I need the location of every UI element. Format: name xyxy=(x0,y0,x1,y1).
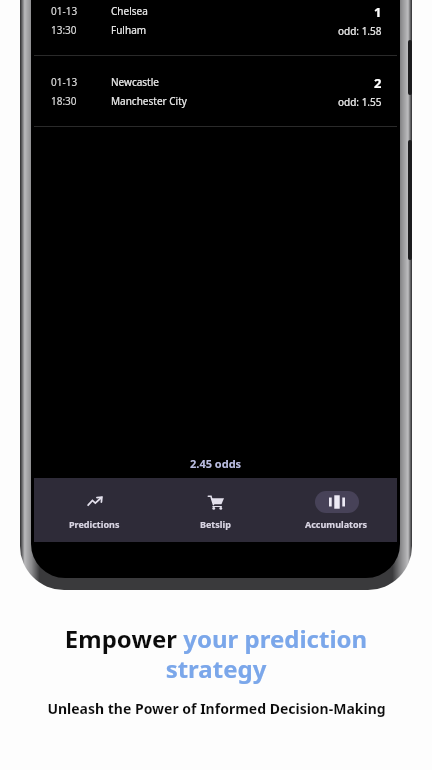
button[interactable]: 01-13 xyxy=(31,0,400,55)
staticText: Empower your prediction strategy xyxy=(24,622,408,685)
button[interactable]: Predictions xyxy=(34,485,155,536)
button[interactable]: Accumulators xyxy=(276,485,397,536)
staticText: Predictions xyxy=(69,518,120,530)
other: Predictions xyxy=(87,494,103,510)
staticText: odd: 1.58 xyxy=(338,24,382,38)
button[interactable]: 01-13 xyxy=(31,56,400,126)
staticText: Newcastle xyxy=(111,75,159,89)
staticText: 2.45 odds xyxy=(190,456,242,471)
staticText: 2 xyxy=(374,74,382,92)
button[interactable]: Betslip xyxy=(155,485,276,536)
staticText: Unleash the Power of Informed Decision-M… xyxy=(47,699,386,718)
staticText: odd: 1.55 xyxy=(338,95,382,109)
other: Volume button xyxy=(408,40,412,95)
staticText: 01-13 xyxy=(51,4,78,18)
other: Accumulators xyxy=(329,494,345,510)
staticText: 1 xyxy=(374,3,382,21)
staticText: Manchester City xyxy=(111,94,187,108)
staticText: Fulham xyxy=(111,23,147,37)
staticText: Betslip xyxy=(200,518,231,530)
staticText: Chelsea xyxy=(111,4,148,18)
other: Betslip xyxy=(208,494,224,510)
staticText: Accumulators xyxy=(305,518,368,530)
staticText: 01-13 xyxy=(51,75,78,89)
other: Power button xyxy=(408,140,412,260)
staticText: 13:30 xyxy=(51,23,77,37)
staticText: 18:30 xyxy=(51,94,77,108)
